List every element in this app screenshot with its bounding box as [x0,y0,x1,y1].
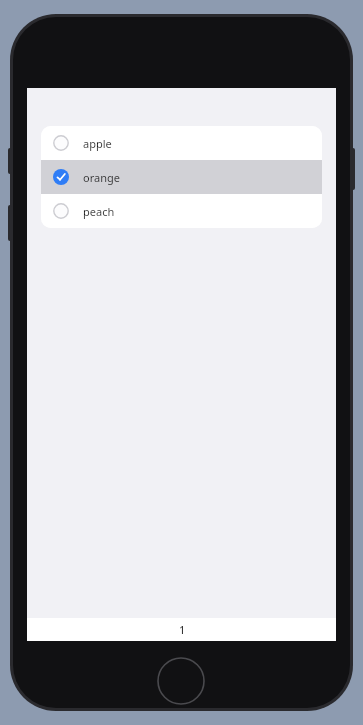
staticText: apple [83,136,112,151]
button[interactable]: orange [41,160,322,194]
button[interactable]: apple [41,126,322,160]
staticText: peach [83,204,115,219]
staticText: 1 [179,623,185,637]
button[interactable]: peach [41,194,322,228]
button[interactable]: Home [157,657,205,705]
staticText: orange [83,170,120,185]
